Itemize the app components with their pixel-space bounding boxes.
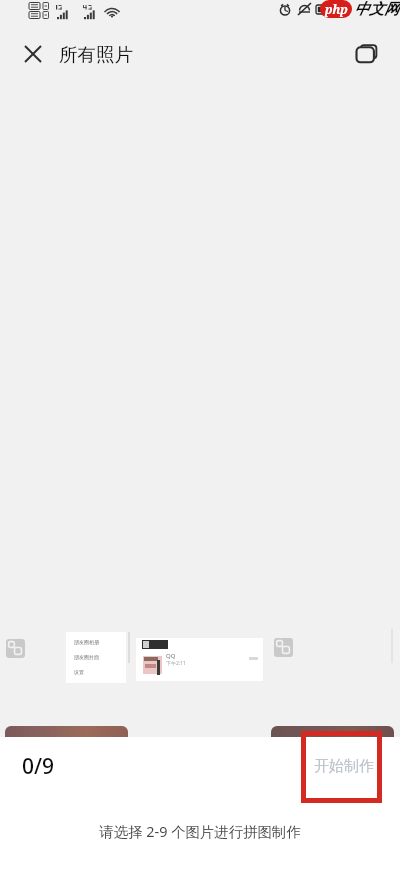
staticText: 所有照片 [59,43,133,66]
button[interactable]: Switch album [346,33,386,73]
staticText: 朋友圈封面 [74,654,99,660]
button[interactable] [266,612,330,686]
staticText: 开始制作 [314,757,374,776]
button[interactable] [0,612,64,686]
button[interactable] [271,726,394,737]
staticText: QQ [166,652,176,660]
button[interactable]: Close [13,34,53,74]
staticText: 朋友圈相册 [74,639,99,645]
staticText: 请选择 2-9 个图片进行拼图制作 [99,822,301,842]
button[interactable]: QQ [136,638,263,681]
staticText: php [325,1,348,17]
staticText: 0/9 [22,752,55,781]
staticText: 中文网 [354,0,399,19]
staticText: 下午2:11 [166,660,186,667]
staticText: 设置 [74,669,84,675]
button[interactable] [5,726,128,737]
button[interactable]: 朋友圈相册 [66,632,126,683]
button[interactable]: 开始制作 [308,753,380,779]
